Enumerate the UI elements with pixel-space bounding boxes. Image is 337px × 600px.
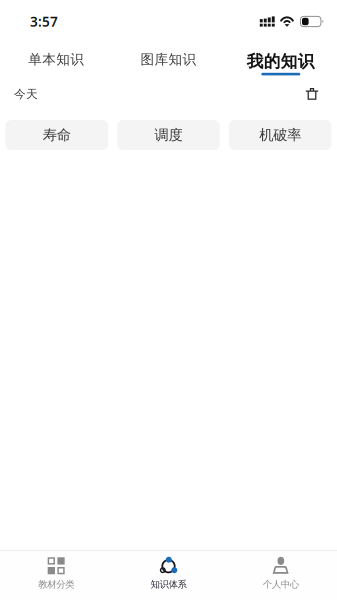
staticText: 单本知识 [28, 51, 84, 68]
staticText: 调度 [154, 126, 182, 144]
button[interactable]: 教材分类 [0, 551, 112, 600]
button[interactable]: 我的知识 [225, 43, 337, 77]
button[interactable]: 机破率 [229, 120, 331, 150]
staticText: 教材分类 [38, 578, 74, 590]
staticText: 我的知识 [247, 51, 315, 72]
staticText: 图库知识 [140, 51, 196, 68]
button[interactable]: Delete [297, 82, 327, 106]
staticText: 3:57 [30, 12, 58, 31]
staticText: 今天 [14, 87, 38, 101]
button[interactable]: 知识体系 [112, 551, 225, 600]
button[interactable]: 单本知识 [0, 43, 112, 77]
button[interactable]: 图库知识 [112, 43, 225, 77]
button[interactable]: 个人中心 [225, 551, 337, 600]
button[interactable]: 调度 [117, 120, 220, 150]
staticText: 机破率 [259, 126, 301, 144]
staticText: 寿命 [43, 126, 71, 144]
staticText: 知识体系 [150, 578, 186, 590]
button[interactable]: 寿命 [5, 120, 108, 150]
staticText: 个人中心 [263, 578, 299, 590]
